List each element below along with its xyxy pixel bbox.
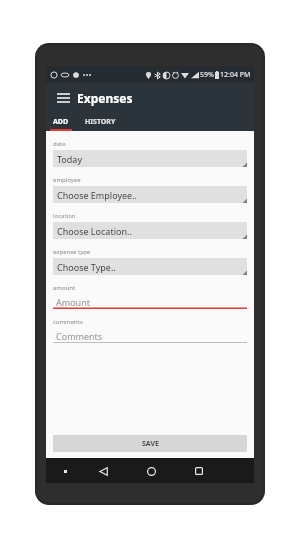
staticText: Comments [56,330,103,342]
staticText: Expenses [77,90,133,106]
button[interactable]: Home [142,462,160,480]
staticText: expense type [53,248,91,256]
staticText: 12:04 PM [220,70,251,80]
staticText: Choose Type.. [57,261,116,273]
staticText: amount [53,284,76,292]
button[interactable]: SAVE [53,435,247,452]
button[interactable]: Choose Location.. [53,222,247,239]
staticText: location [53,212,76,220]
button[interactable]: Comments [53,328,247,343]
button[interactable]: Back [94,462,112,480]
staticText: HISTORY [85,117,116,127]
button[interactable]: Keyboard indicator [60,466,70,476]
staticText: employee [53,176,81,184]
staticText: comments [53,318,83,326]
button[interactable]: Open navigation menu [52,87,74,109]
staticText: date [53,140,66,148]
button[interactable]: Amount [53,294,247,309]
staticText: 59% [200,70,214,80]
button[interactable]: Choose Employee.. [53,186,247,203]
staticText: Today [57,153,82,165]
button[interactable]: Choose Type.. [53,258,247,275]
staticText: Choose Location.. [57,225,132,237]
staticText: SAVE [142,439,159,449]
button[interactable]: ADD [46,113,75,131]
button[interactable]: HISTORY [75,113,125,131]
button[interactable]: Recent apps [190,462,208,480]
staticText: Amount [56,296,90,308]
staticText: Choose Employee.. [57,189,137,201]
staticText: ADD [53,117,69,127]
button[interactable]: Today [53,150,247,167]
